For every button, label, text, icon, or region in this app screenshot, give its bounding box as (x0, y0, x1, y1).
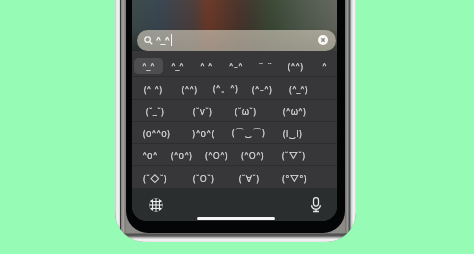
button[interactable]: (^。^) (203, 81, 247, 97)
staticText: ^ (322, 61, 327, 72)
staticText: ^_^ (156, 34, 170, 47)
staticText: (^_^) (288, 84, 309, 95)
button[interactable]: (^O^) (194, 147, 238, 163)
staticText: (⌒‿⌒) (231, 127, 266, 139)
button[interactable]: )^o^( (181, 125, 225, 141)
button[interactable]: (˘◇˘) (133, 170, 177, 186)
staticText: )^o^( (192, 128, 215, 139)
button[interactable]: (˘∀˘) (227, 170, 271, 186)
button[interactable]: ^ (310, 58, 337, 74)
button[interactable]: (^ ^) (132, 81, 175, 97)
staticText: (^ ^) (143, 84, 163, 95)
button[interactable]: (˘▽˘) (271, 147, 315, 163)
button[interactable]: ^_^ (163, 58, 192, 74)
staticText: (˘∀˘) (238, 173, 260, 184)
staticText: (^^) (181, 84, 198, 95)
button[interactable]: (⌒‿⌒) (226, 125, 270, 141)
staticText: (˘ω˘) (234, 106, 257, 117)
button[interactable]: (^^) (281, 58, 310, 74)
button[interactable]: (˘O˘) (181, 170, 225, 186)
button[interactable]: (^O^) (230, 147, 274, 163)
button[interactable]: (^_^) (276, 81, 320, 97)
button[interactable]: (˘ω˘) (223, 103, 267, 119)
button[interactable]: (l‿l) (270, 125, 314, 141)
staticText: (˘v˘) (192, 106, 213, 117)
staticText: (°▽°) (281, 173, 308, 184)
staticText: (^。^) (212, 83, 239, 95)
staticText: (^-^) (251, 84, 273, 95)
button[interactable]: (^-^) (240, 81, 284, 97)
staticText: (^O^) (240, 150, 265, 161)
staticText: (˘▽˘) (281, 150, 306, 161)
staticText: (^ω^) (282, 106, 307, 117)
button[interactable]: ^-^ (221, 58, 250, 74)
staticText: (˘O˘) (192, 173, 215, 184)
button[interactable]: ¨ ¨ (251, 58, 280, 74)
button[interactable]: Clear search (318, 35, 328, 45)
staticText: (^o^) (170, 150, 193, 161)
staticText: ^_^ (142, 61, 155, 72)
staticText: ¨ ¨ (258, 61, 273, 72)
button[interactable]: Voice input (308, 197, 324, 213)
staticText: (l‿l) (282, 128, 303, 139)
button[interactable]: (^o^) (159, 147, 203, 163)
button[interactable]: (°▽°) (272, 170, 316, 186)
button[interactable]: ^o^ (132, 147, 172, 163)
staticText: ^-^ (229, 61, 243, 72)
button[interactable]: (˘v˘) (180, 103, 224, 119)
button[interactable]: ^_^ (134, 58, 163, 74)
button[interactable]: (^^) (167, 81, 211, 97)
button[interactable]: ^ ^ (192, 58, 221, 74)
button[interactable]: Change keyboard language (148, 197, 164, 213)
button[interactable]: (^ω^) (272, 103, 316, 119)
staticText: (^^) (287, 61, 304, 72)
button[interactable]: (˘_˘) (133, 103, 177, 119)
staticText: ^ ^ (200, 61, 213, 72)
staticText: (^O^) (204, 150, 229, 161)
staticText: ^o^ (142, 150, 158, 161)
staticText: ^_^ (171, 61, 184, 72)
button[interactable]: ^_^ (137, 30, 336, 51)
staticText: (˘◇˘) (142, 173, 168, 184)
button[interactable]: (o^^o) (134, 125, 178, 141)
staticText: (o^^o) (142, 128, 171, 139)
staticText: (˘_˘) (145, 106, 165, 117)
